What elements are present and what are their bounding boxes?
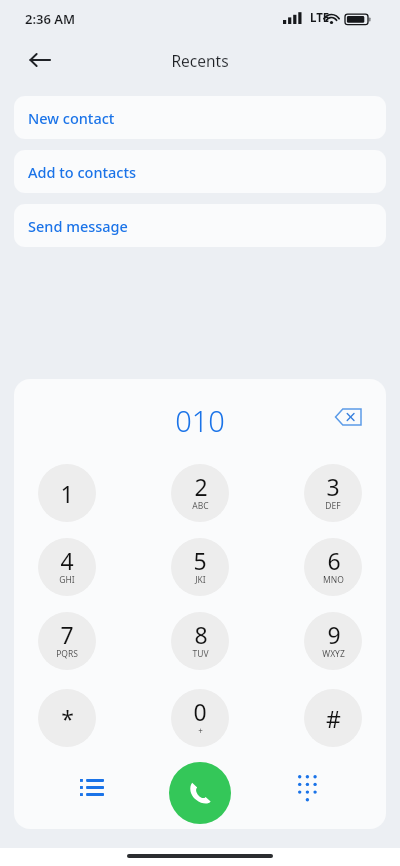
- button[interactable]: Backspace: [326, 397, 370, 437]
- button[interactable]: Call log: [64, 763, 120, 811]
- staticText: 8: [194, 619, 208, 650]
- staticText: MNO: [323, 574, 344, 586]
- staticText: LTE: [310, 10, 330, 26]
- button[interactable]: Back: [16, 40, 64, 80]
- staticText: 4: [60, 545, 74, 576]
- button[interactable]: *: [38, 689, 96, 747]
- staticText: Send message: [28, 216, 128, 236]
- staticText: GHI: [59, 574, 75, 586]
- staticText: TUV: [192, 648, 209, 660]
- button[interactable]: 7: [38, 612, 96, 670]
- button[interactable]: #: [304, 689, 362, 747]
- button[interactable]: Send message: [14, 204, 386, 247]
- staticText: 5: [193, 545, 207, 576]
- staticText: ABC: [192, 500, 209, 512]
- staticText: 2: [194, 471, 208, 502]
- staticText: +: [198, 725, 203, 736]
- button[interactable]: 5: [171, 538, 229, 596]
- button[interactable]: Add to contacts: [14, 150, 386, 193]
- staticText: 7: [60, 619, 74, 650]
- staticText: #: [326, 703, 341, 734]
- staticText: 1: [60, 478, 74, 509]
- staticText: WXYZ: [322, 648, 345, 660]
- staticText: New contact: [28, 108, 115, 128]
- button[interactable]: 8: [171, 612, 229, 670]
- button[interactable]: Call: [169, 762, 231, 824]
- staticText: 9: [327, 619, 341, 650]
- staticText: 2:36 AM: [25, 10, 76, 28]
- staticText: JKI: [195, 574, 206, 586]
- staticText: PQRS: [56, 648, 78, 660]
- button[interactable]: Keypad: [280, 763, 336, 811]
- staticText: 0: [193, 696, 207, 727]
- staticText: 010: [14, 401, 386, 440]
- staticText: 6: [327, 545, 341, 576]
- button[interactable]: New contact: [14, 96, 386, 139]
- button[interactable]: 6: [304, 538, 362, 596]
- staticText: Add to contacts: [28, 162, 137, 182]
- staticText: DEF: [325, 500, 341, 512]
- button[interactable]: 3: [304, 464, 362, 522]
- staticText: *: [61, 703, 74, 734]
- button[interactable]: 2: [171, 464, 229, 522]
- button[interactable]: 0: [171, 689, 229, 747]
- button[interactable]: 1: [38, 464, 96, 522]
- staticText: 3: [326, 471, 340, 502]
- button[interactable]: 9: [304, 612, 362, 670]
- staticText: Recents: [0, 50, 400, 71]
- button[interactable]: 4: [38, 538, 96, 596]
